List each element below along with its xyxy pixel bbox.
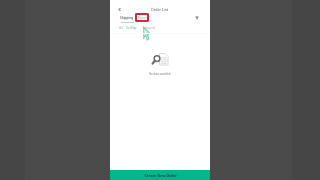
button[interactable]: Shipped — [143, 26, 155, 30]
button[interactable]: To Ship — [126, 26, 137, 30]
staticText: Create New Order — [144, 173, 177, 178]
staticText: Shipping — [120, 16, 134, 20]
button[interactable]: Back — [114, 4, 124, 14]
button[interactable]: Create New Order — [110, 170, 210, 180]
button[interactable]: Filter — [192, 13, 202, 23]
button[interactable]: All — [119, 26, 123, 30]
staticText: No data available — [149, 72, 171, 76]
staticText: Order List — [151, 7, 169, 12]
button[interactable]: Shipping — [120, 16, 134, 23]
button[interactable]: Export — [138, 16, 148, 20]
